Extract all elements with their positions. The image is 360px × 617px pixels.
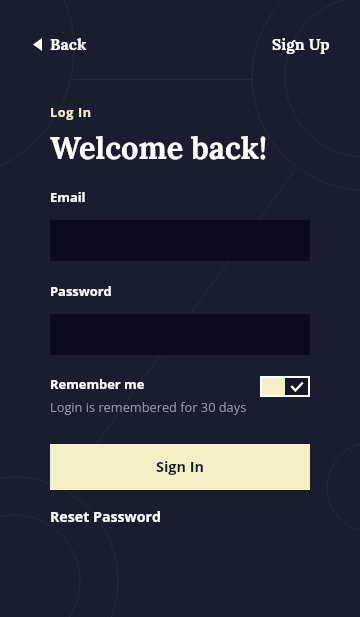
staticText: Remember me (50, 375, 145, 393)
staticText: Password (50, 282, 112, 300)
button[interactable]: Sign In (50, 444, 310, 490)
staticText: Reset Password (50, 507, 161, 526)
staticText: Sign In (156, 457, 204, 477)
button[interactable]: Remember me toggle (260, 376, 310, 397)
staticText: Login is remembered for 30 days (50, 398, 247, 415)
staticText: Email (50, 188, 86, 206)
staticText: Welcome back! (50, 128, 267, 167)
button[interactable]: Sign Up (268, 29, 334, 59)
staticText: Log In (50, 104, 92, 121)
staticText: Sign Up (272, 34, 330, 54)
other: Back (33, 38, 42, 51)
button[interactable]: Back (29, 29, 91, 59)
staticText: Back (50, 34, 87, 54)
button[interactable]: Reset Password (50, 507, 161, 526)
